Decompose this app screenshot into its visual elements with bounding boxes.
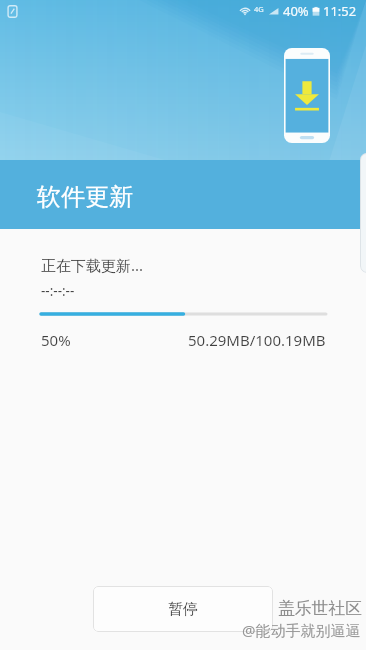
staticText: 11:52 — [323, 2, 357, 20]
staticText: 盖乐世社区 — [278, 598, 362, 619]
staticText: 40% — [283, 2, 309, 20]
staticText: 50% — [41, 330, 71, 350]
staticText: 暂停 — [168, 600, 198, 619]
staticText: 正在下载更新... — [41, 255, 144, 275]
staticText: --:--:-- — [41, 282, 75, 300]
staticText: 50.29MB/100.19MB — [188, 330, 326, 350]
staticText: @能动手就别逼逼 — [242, 620, 361, 640]
staticText: 4G — [254, 4, 264, 14]
button[interactable]: 暂停 — [93, 586, 273, 632]
staticText: 软件更新 — [37, 182, 133, 212]
